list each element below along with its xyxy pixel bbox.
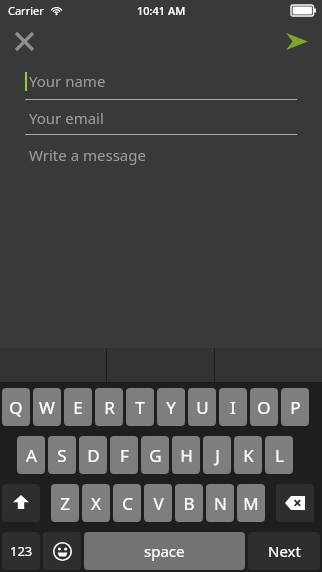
button[interactable]: G: [141, 436, 169, 474]
staticText: U: [196, 396, 209, 419]
staticText: A: [26, 444, 37, 467]
button[interactable]: K: [234, 436, 262, 474]
staticText: 123: [10, 542, 33, 560]
staticText: Carrier: [8, 3, 44, 18]
staticText: 10:41 AM: [137, 3, 186, 18]
button[interactable]: F: [110, 436, 138, 474]
button[interactable]: V: [144, 484, 172, 522]
button[interactable]: 123: [2, 532, 40, 570]
button[interactable]: H: [172, 436, 200, 474]
staticText: E: [73, 396, 83, 419]
staticText: S: [57, 444, 67, 467]
button[interactable]: S: [48, 436, 76, 474]
staticText: L: [275, 444, 284, 467]
button[interactable]: Write a message: [25, 135, 297, 175]
button[interactable]: B: [175, 484, 203, 522]
staticText: T: [135, 396, 145, 419]
staticText: H: [180, 444, 193, 467]
button[interactable]: X: [82, 484, 110, 522]
button[interactable]: Send: [278, 22, 316, 60]
staticText: Q: [9, 396, 23, 419]
staticText: J: [215, 444, 220, 467]
button[interactable]: O: [250, 388, 278, 426]
staticText: Your name: [29, 71, 106, 91]
button[interactable]: Next: [248, 532, 320, 570]
button[interactable]: W: [33, 388, 61, 426]
button[interactable]: L: [265, 436, 293, 474]
staticText: N: [214, 492, 227, 515]
staticText: Next: [268, 541, 301, 561]
button[interactable]: Your name: [25, 62, 297, 100]
staticText: Z: [60, 492, 70, 515]
staticText: P: [290, 396, 301, 419]
staticText: I: [230, 396, 236, 419]
staticText: Write a message: [29, 145, 146, 165]
button[interactable]: Y: [157, 388, 185, 426]
staticText: O: [257, 396, 271, 419]
button[interactable]: J: [203, 436, 231, 474]
staticText: K: [243, 444, 254, 467]
button[interactable]: D: [79, 436, 107, 474]
staticText: B: [183, 492, 195, 515]
button[interactable]: Shift: [2, 484, 40, 522]
button[interactable]: U: [188, 388, 216, 426]
staticText: W: [39, 396, 55, 419]
button[interactable]: N: [206, 484, 234, 522]
button[interactable]: Close: [6, 23, 42, 59]
button[interactable]: A: [17, 436, 45, 474]
staticText: Y: [166, 396, 176, 419]
button[interactable]: E: [64, 388, 92, 426]
button[interactable]: R: [95, 388, 123, 426]
button[interactable]: M: [237, 484, 265, 522]
button[interactable]: Z: [51, 484, 79, 522]
staticText: space: [144, 541, 185, 561]
staticText: R: [104, 396, 115, 419]
staticText: X: [91, 492, 101, 515]
button[interactable]: Q: [2, 388, 30, 426]
button[interactable]: P: [281, 388, 309, 426]
button[interactable]: Backspace: [276, 484, 314, 522]
staticText: M: [243, 492, 259, 515]
staticText: V: [153, 492, 164, 515]
staticText: F: [120, 444, 129, 467]
button[interactable]: C: [113, 484, 141, 522]
button[interactable]: space: [84, 532, 245, 570]
staticText: G: [149, 444, 162, 467]
staticText: Your email: [29, 108, 104, 128]
button[interactable]: Emoji: [43, 532, 81, 570]
staticText: C: [122, 492, 133, 515]
staticText: D: [87, 444, 100, 467]
button[interactable]: Your email: [25, 100, 297, 135]
button[interactable]: T: [126, 388, 154, 426]
button[interactable]: I: [219, 388, 247, 426]
